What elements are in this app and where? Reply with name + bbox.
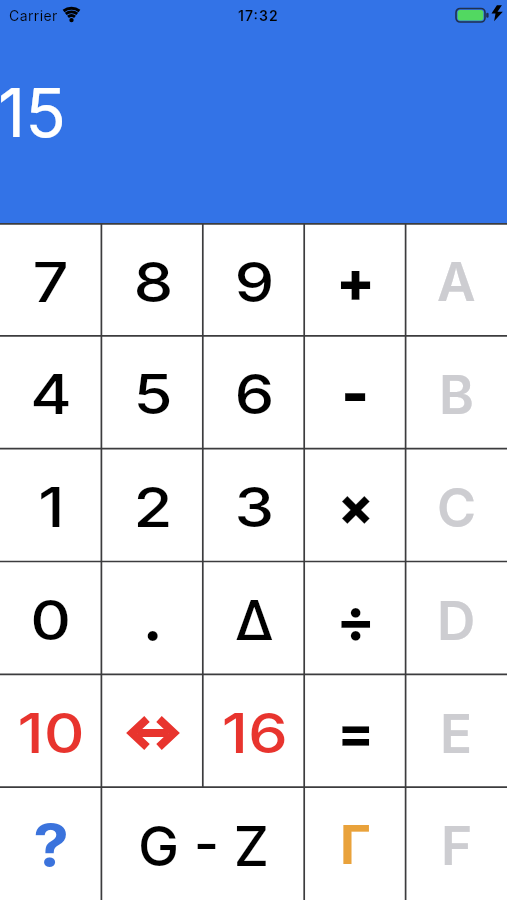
- button[interactable]: D: [406, 561, 507, 674]
- button[interactable]: ×: [305, 448, 406, 561]
- staticText: 0: [30, 587, 72, 654]
- staticText: 1: [38, 474, 65, 541]
- staticText: 16: [222, 700, 288, 767]
- staticText: E: [440, 702, 473, 766]
- button[interactable]: G - Z: [102, 787, 305, 900]
- button[interactable]: B: [406, 335, 507, 448]
- button[interactable]: .: [102, 561, 204, 674]
- button[interactable]: 7: [0, 223, 102, 335]
- staticText: -: [341, 357, 370, 430]
- staticText: =: [337, 699, 375, 766]
- button[interactable]: 10: [0, 674, 102, 787]
- button[interactable]: Γ: [305, 787, 406, 900]
- button[interactable]: 9: [204, 223, 305, 335]
- staticText: 10: [18, 700, 85, 767]
- button[interactable]: 6: [204, 335, 305, 448]
- staticText: ?: [33, 810, 70, 880]
- button[interactable]: 0: [0, 561, 102, 674]
- staticText: ÷: [336, 585, 376, 655]
- staticText: Δ: [235, 587, 274, 654]
- button[interactable]: 2: [102, 448, 204, 561]
- staticText: G - Z: [138, 813, 270, 880]
- staticText: +: [336, 247, 376, 316]
- staticText: Γ: [340, 813, 371, 877]
- staticText: 5: [133, 361, 172, 428]
- button[interactable]: =: [305, 674, 406, 787]
- button[interactable]: ?: [0, 787, 102, 900]
- button[interactable]: 5: [102, 335, 204, 448]
- button[interactable]: 16: [204, 674, 305, 787]
- staticText: 17:32: [238, 7, 279, 24]
- staticText: F: [441, 814, 473, 878]
- button[interactable]: E: [406, 674, 507, 787]
- button[interactable]: 4: [0, 335, 102, 448]
- staticText: A: [437, 250, 476, 314]
- staticText: 4: [30, 361, 73, 428]
- staticText: .: [143, 587, 163, 654]
- button[interactable]: 3: [204, 448, 305, 561]
- button[interactable]: F: [406, 787, 507, 900]
- button[interactable]: +: [305, 223, 406, 335]
- staticText: 2: [133, 474, 172, 541]
- button[interactable]: 1: [0, 448, 102, 561]
- staticText: 9: [234, 249, 275, 316]
- button[interactable]: Δ: [204, 561, 305, 674]
- staticText: C: [437, 476, 477, 540]
- staticText: 6: [234, 361, 275, 428]
- staticText: ×: [338, 475, 374, 538]
- staticText: 8: [133, 249, 174, 316]
- staticText: B: [439, 363, 474, 427]
- button[interactable]: A: [406, 223, 507, 335]
- staticText: 7: [33, 249, 69, 316]
- button[interactable]: -: [305, 335, 406, 448]
- staticText: D: [437, 589, 476, 653]
- button[interactable]: ÷: [305, 561, 406, 674]
- staticText: 3: [234, 474, 275, 541]
- button[interactable]: [102, 674, 204, 787]
- staticText: 15: [0, 72, 66, 153]
- staticText: Carrier: [9, 7, 58, 24]
- button[interactable]: C: [406, 448, 507, 561]
- button[interactable]: 8: [102, 223, 204, 335]
